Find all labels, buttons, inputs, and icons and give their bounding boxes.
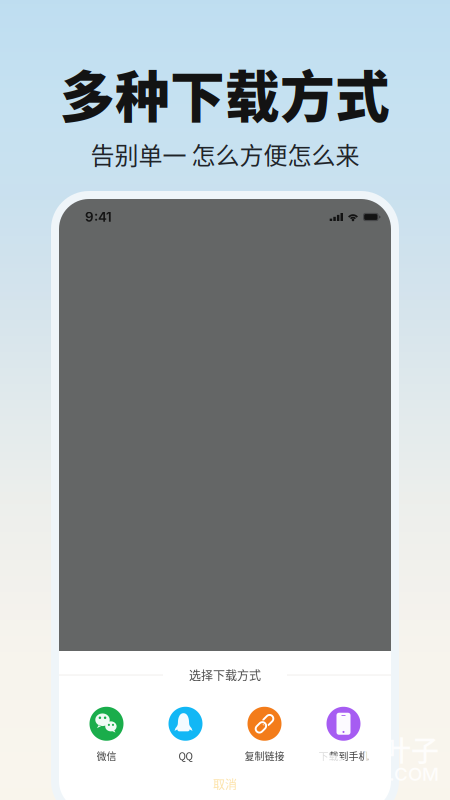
staticText: 多种下载方式 — [60, 53, 390, 133]
staticText: 微信 — [96, 749, 116, 763]
staticText: 复制链接 — [244, 749, 284, 763]
staticText: QQ — [178, 749, 192, 763]
staticText: 取消 — [213, 775, 237, 793]
button[interactable]: 取消 — [59, 771, 391, 797]
staticText: 7YZ.COM — [353, 763, 439, 785]
button[interactable]: 复制链接 — [225, 707, 304, 763]
staticText: 七叶子 — [355, 729, 439, 769]
button[interactable]: QQ — [146, 707, 225, 763]
staticText: 9:41 — [85, 209, 112, 225]
button[interactable]: 微信 — [67, 707, 146, 763]
staticText: 告别单一 怎么方便怎么来 — [90, 137, 359, 171]
staticText: 选择下载方式 — [189, 666, 261, 684]
button[interactable]: 下载到手机 — [304, 707, 383, 763]
staticText: 下载到手机 — [318, 749, 368, 763]
